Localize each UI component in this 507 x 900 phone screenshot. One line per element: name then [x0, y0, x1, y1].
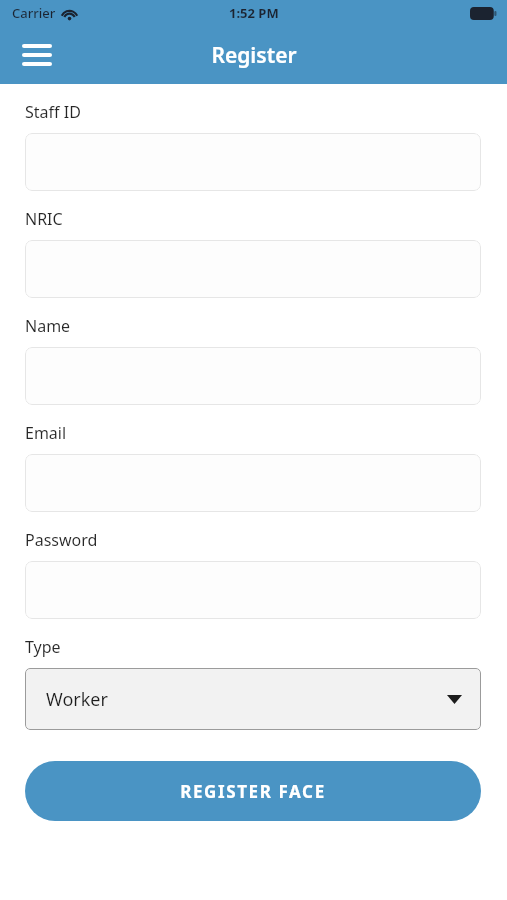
- staticText: 1:52 PM: [229, 4, 279, 22]
- button[interactable]: [25, 347, 481, 405]
- button[interactable]: Worker: [25, 668, 481, 730]
- staticText: Register: [211, 41, 297, 70]
- staticText: Password: [25, 529, 98, 551]
- staticText: REGISTER FACE: [180, 780, 326, 803]
- staticText: Email: [25, 422, 67, 444]
- staticText: NRIC: [25, 208, 63, 230]
- staticText: Type: [25, 636, 61, 658]
- button[interactable]: Open navigation menu: [14, 32, 60, 78]
- button[interactable]: [25, 454, 481, 512]
- staticText: Name: [25, 315, 71, 337]
- staticText: Carrier: [12, 4, 56, 22]
- staticText: Worker: [46, 687, 108, 712]
- button[interactable]: [25, 133, 481, 191]
- button[interactable]: REGISTER FACE: [25, 761, 481, 821]
- button[interactable]: [25, 561, 481, 619]
- staticText: Staff ID: [25, 101, 81, 123]
- button[interactable]: [25, 240, 481, 298]
